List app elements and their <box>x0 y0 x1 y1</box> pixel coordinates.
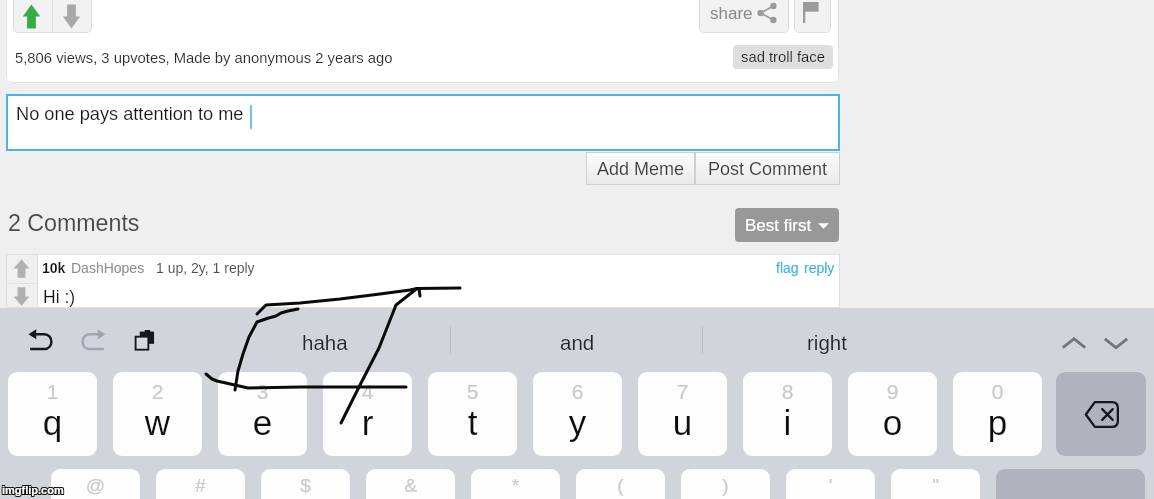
button[interactable]: 8 <box>743 372 832 456</box>
staticText: 2 Comments <box>8 210 140 236</box>
button[interactable]: ) <box>681 469 770 499</box>
staticText: imgflip.com <box>2 483 64 495</box>
button[interactable]: reply <box>804 260 835 276</box>
staticText: Post Comment <box>708 159 828 179</box>
button[interactable]: Backspace <box>1056 372 1146 456</box>
staticText: 0 <box>953 380 1042 403</box>
button[interactable]: sad troll face <box>733 45 833 69</box>
button[interactable]: share <box>699 0 789 33</box>
button[interactable]: 2 <box>113 372 202 456</box>
staticText: DashHopes <box>71 260 145 276</box>
button[interactable]: Downvote comment <box>13 286 30 307</box>
staticText: Hi :) <box>43 287 76 307</box>
staticText: imgflip.com <box>3 485 65 497</box>
staticText: haha <box>302 331 348 354</box>
staticText: 1 <box>8 380 97 403</box>
button[interactable]: Flag <box>794 0 831 33</box>
button[interactable]: right <box>767 324 887 360</box>
button[interactable]: & <box>366 469 455 499</box>
staticText: $ <box>261 475 350 496</box>
staticText: & <box>366 475 455 496</box>
staticText: * <box>471 475 560 496</box>
staticText: right <box>807 331 847 354</box>
button[interactable]: haha <box>265 324 385 360</box>
staticText: r <box>323 403 412 442</box>
button[interactable]: Best first <box>735 208 839 242</box>
staticText: imgflip.com <box>2 484 64 496</box>
staticText: # <box>156 475 245 496</box>
button[interactable]: Add Meme <box>586 152 695 185</box>
button[interactable]: 1 <box>8 372 97 456</box>
staticText: w <box>113 403 202 442</box>
button[interactable]: Upvote <box>13 0 52 33</box>
staticText: imgflip.com <box>3 484 65 496</box>
staticText: No one pays attention to me <box>16 104 244 124</box>
staticText: e <box>218 403 307 442</box>
staticText: " <box>891 475 980 496</box>
button[interactable]: Upvote comment <box>13 258 30 279</box>
staticText: t <box>428 403 517 442</box>
button[interactable]: * <box>471 469 560 499</box>
staticText: i <box>743 403 832 442</box>
button[interactable]: Downvote <box>53 0 92 33</box>
staticText: u <box>638 403 727 442</box>
button[interactable]: 4 <box>323 372 412 456</box>
button[interactable]: ( <box>576 469 665 499</box>
button[interactable]: flag <box>776 260 799 276</box>
button[interactable]: 5 <box>428 372 517 456</box>
staticText: 8 <box>743 380 832 403</box>
staticText: 5,806 views, 3 upvotes, Made by anonymou… <box>15 50 393 67</box>
staticText: ) <box>681 475 770 496</box>
button[interactable]: 7 <box>638 372 727 456</box>
staticText: 4 <box>323 380 412 403</box>
button[interactable]: 0 <box>953 372 1042 456</box>
staticText: ( <box>576 475 665 496</box>
staticText: imgflip.com <box>2 485 64 497</box>
staticText: share <box>710 4 753 23</box>
staticText: sad troll face <box>741 49 825 66</box>
button[interactable]: 9 <box>848 372 937 456</box>
button[interactable]: Post Comment <box>695 152 840 185</box>
button[interactable]: 3 <box>218 372 307 456</box>
staticText: 3 <box>218 380 307 403</box>
staticText: y <box>533 403 622 442</box>
staticText: 10k <box>42 260 66 276</box>
staticText: q <box>8 403 97 442</box>
staticText: 1 up, 2y, 1 reply <box>156 260 255 276</box>
staticText: imgflip.com <box>1 483 63 495</box>
staticText: imgflip.com <box>1 485 63 497</box>
staticText: 6 <box>533 380 622 403</box>
button[interactable]: Shift <box>996 469 1145 499</box>
staticText: Add Meme <box>597 159 685 179</box>
staticText: Best first <box>745 216 812 235</box>
button[interactable]: $ <box>261 469 350 499</box>
button[interactable]: Undo <box>26 326 58 358</box>
staticText: p <box>953 403 1042 442</box>
staticText: 9 <box>848 380 937 403</box>
staticText: and <box>560 331 595 354</box>
button[interactable]: " <box>891 469 980 499</box>
staticText: @ <box>51 475 140 496</box>
button[interactable]: Redo <box>76 326 108 358</box>
staticText: 2 <box>113 380 202 403</box>
staticText: imgflip.com <box>1 484 63 496</box>
staticText: 7 <box>638 380 727 403</box>
button[interactable]: and <box>517 324 637 360</box>
button[interactable]: Clipboard <box>133 326 159 352</box>
staticText: 5 <box>428 380 517 403</box>
button[interactable]: 6 <box>533 372 622 456</box>
button[interactable]: Previous suggestion <box>1054 324 1094 364</box>
staticText: imgflip.com <box>3 483 65 495</box>
button[interactable]: # <box>156 469 245 499</box>
button[interactable]: Next suggestion <box>1096 324 1136 364</box>
button[interactable]: @ <box>51 469 140 499</box>
button[interactable]: ' <box>786 469 875 499</box>
staticText: o <box>848 403 937 442</box>
